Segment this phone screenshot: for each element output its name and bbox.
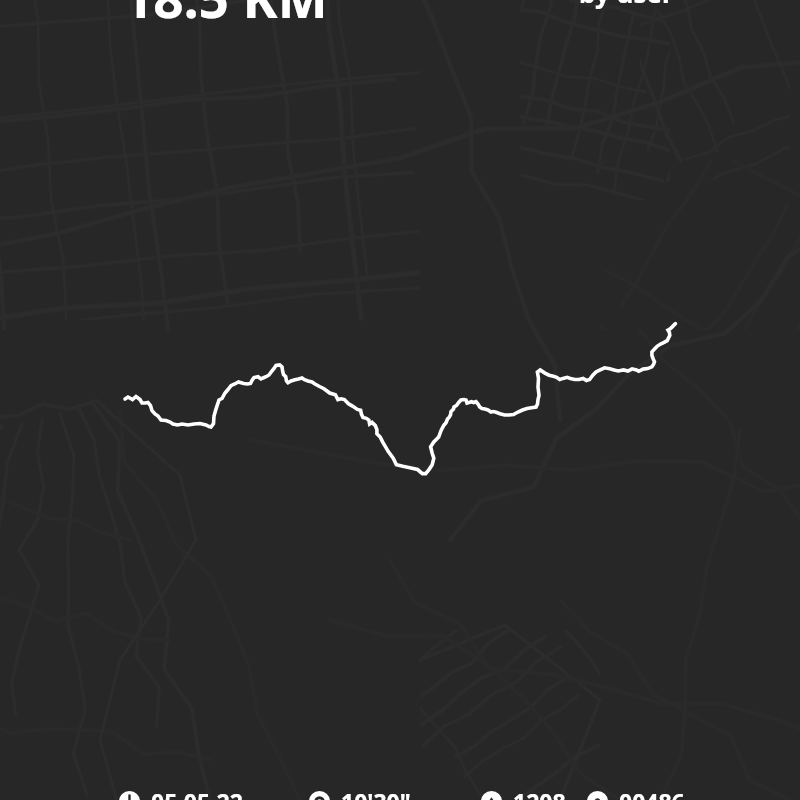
other: Elevation gain — [481, 791, 502, 800]
other: Average pace — [309, 791, 330, 800]
staticText: 05.05.22 — [151, 786, 243, 800]
button[interactable]: Date — [119, 786, 243, 800]
button[interactable]: 18.5 KM — [123, 0, 328, 33]
staticText: 10'30" — [341, 786, 411, 800]
other: Calories burned — [587, 791, 608, 800]
staticText: 1208 — [513, 786, 566, 800]
button[interactable]: Elevation gain — [481, 786, 566, 800]
button[interactable]: Calories burned — [587, 786, 685, 800]
button[interactable]: Average pace — [309, 786, 411, 800]
button[interactable]: by user — [579, 0, 674, 10]
staticText: 00486 — [619, 786, 685, 800]
other: Date — [119, 791, 140, 800]
